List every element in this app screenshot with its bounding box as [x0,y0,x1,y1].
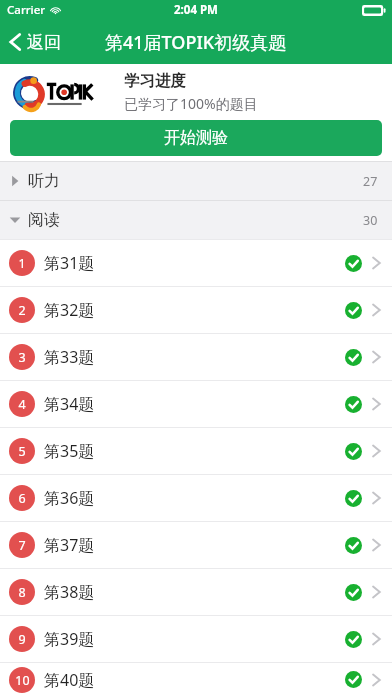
staticText: 第31题 [44,252,95,274]
staticText: 第34题 [44,393,95,415]
staticText: 6 [18,490,26,507]
other: Open [372,255,381,271]
staticText: 第39题 [44,628,95,650]
other: Open [372,672,381,688]
staticText: 开始测验 [164,128,228,148]
staticText: 已学习了100%的题目 [124,94,258,113]
staticText: 第41届TOPIK初级真题 [105,30,287,55]
staticText: 听力 [28,171,60,191]
staticText: 第38题 [44,581,95,603]
other: Open [372,631,381,647]
staticText: 7 [18,537,26,554]
button[interactable]: 7 [0,522,392,568]
button[interactable]: 3 [0,334,392,380]
button[interactable]: 听力 [0,162,392,200]
staticText: 2:04 PM [174,2,218,18]
staticText: 第37题 [44,534,95,556]
button[interactable]: 5 [0,428,392,474]
staticText: 4 [18,396,26,413]
button[interactable]: 1 [0,240,392,286]
button[interactable]: 9 [0,616,392,662]
staticText: 3 [18,349,26,366]
other: Open [372,490,381,506]
staticText: 第33题 [44,346,95,368]
button[interactable]: 8 [0,569,392,615]
button[interactable]: 阅读 [0,201,392,239]
other: Open [372,584,381,600]
staticText: Carrier [7,2,46,18]
button[interactable]: 2 [0,287,392,333]
other: Open [372,349,381,365]
staticText: 第35题 [44,440,95,462]
staticText: 30 [363,212,378,229]
staticText: 学习进度 [124,71,186,91]
button[interactable]: 开始测验 [10,120,382,156]
button[interactable]: 4 [0,381,392,427]
staticText: 2 [18,302,26,319]
staticText: 第36题 [44,487,95,509]
other: Open [372,302,381,318]
button[interactable]: 返回 [0,25,71,59]
staticText: 第32题 [44,299,95,321]
staticText: 10 [15,672,30,689]
other: Open [372,537,381,553]
staticText: 5 [18,443,26,460]
button[interactable]: 10 [0,663,392,696]
button[interactable]: 6 [0,475,392,521]
staticText: 阅读 [28,210,60,230]
other: Open [372,443,381,459]
staticText: 返回 [27,32,61,53]
other: Open [372,396,381,412]
staticText: 1 [18,255,26,272]
staticText: 8 [18,584,26,601]
staticText: 27 [363,173,378,190]
staticText: 9 [18,631,26,648]
staticText: 第40题 [44,669,95,691]
